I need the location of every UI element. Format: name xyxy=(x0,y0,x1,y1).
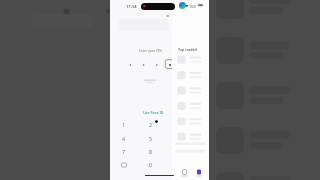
staticText: 8 xyxy=(149,148,153,155)
staticText: 100 xyxy=(189,4,196,9)
button[interactable]: Asset row xyxy=(172,54,209,70)
staticText: 5 xyxy=(149,135,153,142)
button[interactable]: Face ID xyxy=(111,158,137,171)
staticText: 7 xyxy=(122,148,126,155)
button[interactable]: Asset row xyxy=(172,134,209,150)
button[interactable]: Earn xyxy=(178,166,192,178)
staticText: 2 xyxy=(149,121,153,128)
button[interactable]: 1 xyxy=(111,119,137,132)
button[interactable]: 4 xyxy=(111,132,137,145)
staticText: Enter your PIN xyxy=(139,48,162,52)
button[interactable]: Recording indicator xyxy=(141,3,175,10)
button[interactable]: Asset row xyxy=(172,70,209,86)
staticText: 1 xyxy=(122,121,126,128)
button[interactable]: Asset row xyxy=(172,86,209,102)
staticText: 0 xyxy=(149,161,153,168)
button[interactable]: 5 xyxy=(138,132,164,145)
staticText: Top traded xyxy=(178,47,197,52)
staticText: Use Face ID xyxy=(143,110,164,115)
staticText: 17:34 xyxy=(126,4,137,10)
button[interactable]: Wallet xyxy=(193,166,207,178)
button[interactable]: 2 xyxy=(138,119,164,132)
staticText: 4 xyxy=(122,135,126,142)
button[interactable]: Asset row xyxy=(172,102,209,118)
button[interactable]: 0 xyxy=(138,158,164,171)
button[interactable]: 7 xyxy=(111,145,137,158)
button[interactable]: 8 xyxy=(138,145,164,158)
button[interactable]: Asset row xyxy=(172,118,209,134)
